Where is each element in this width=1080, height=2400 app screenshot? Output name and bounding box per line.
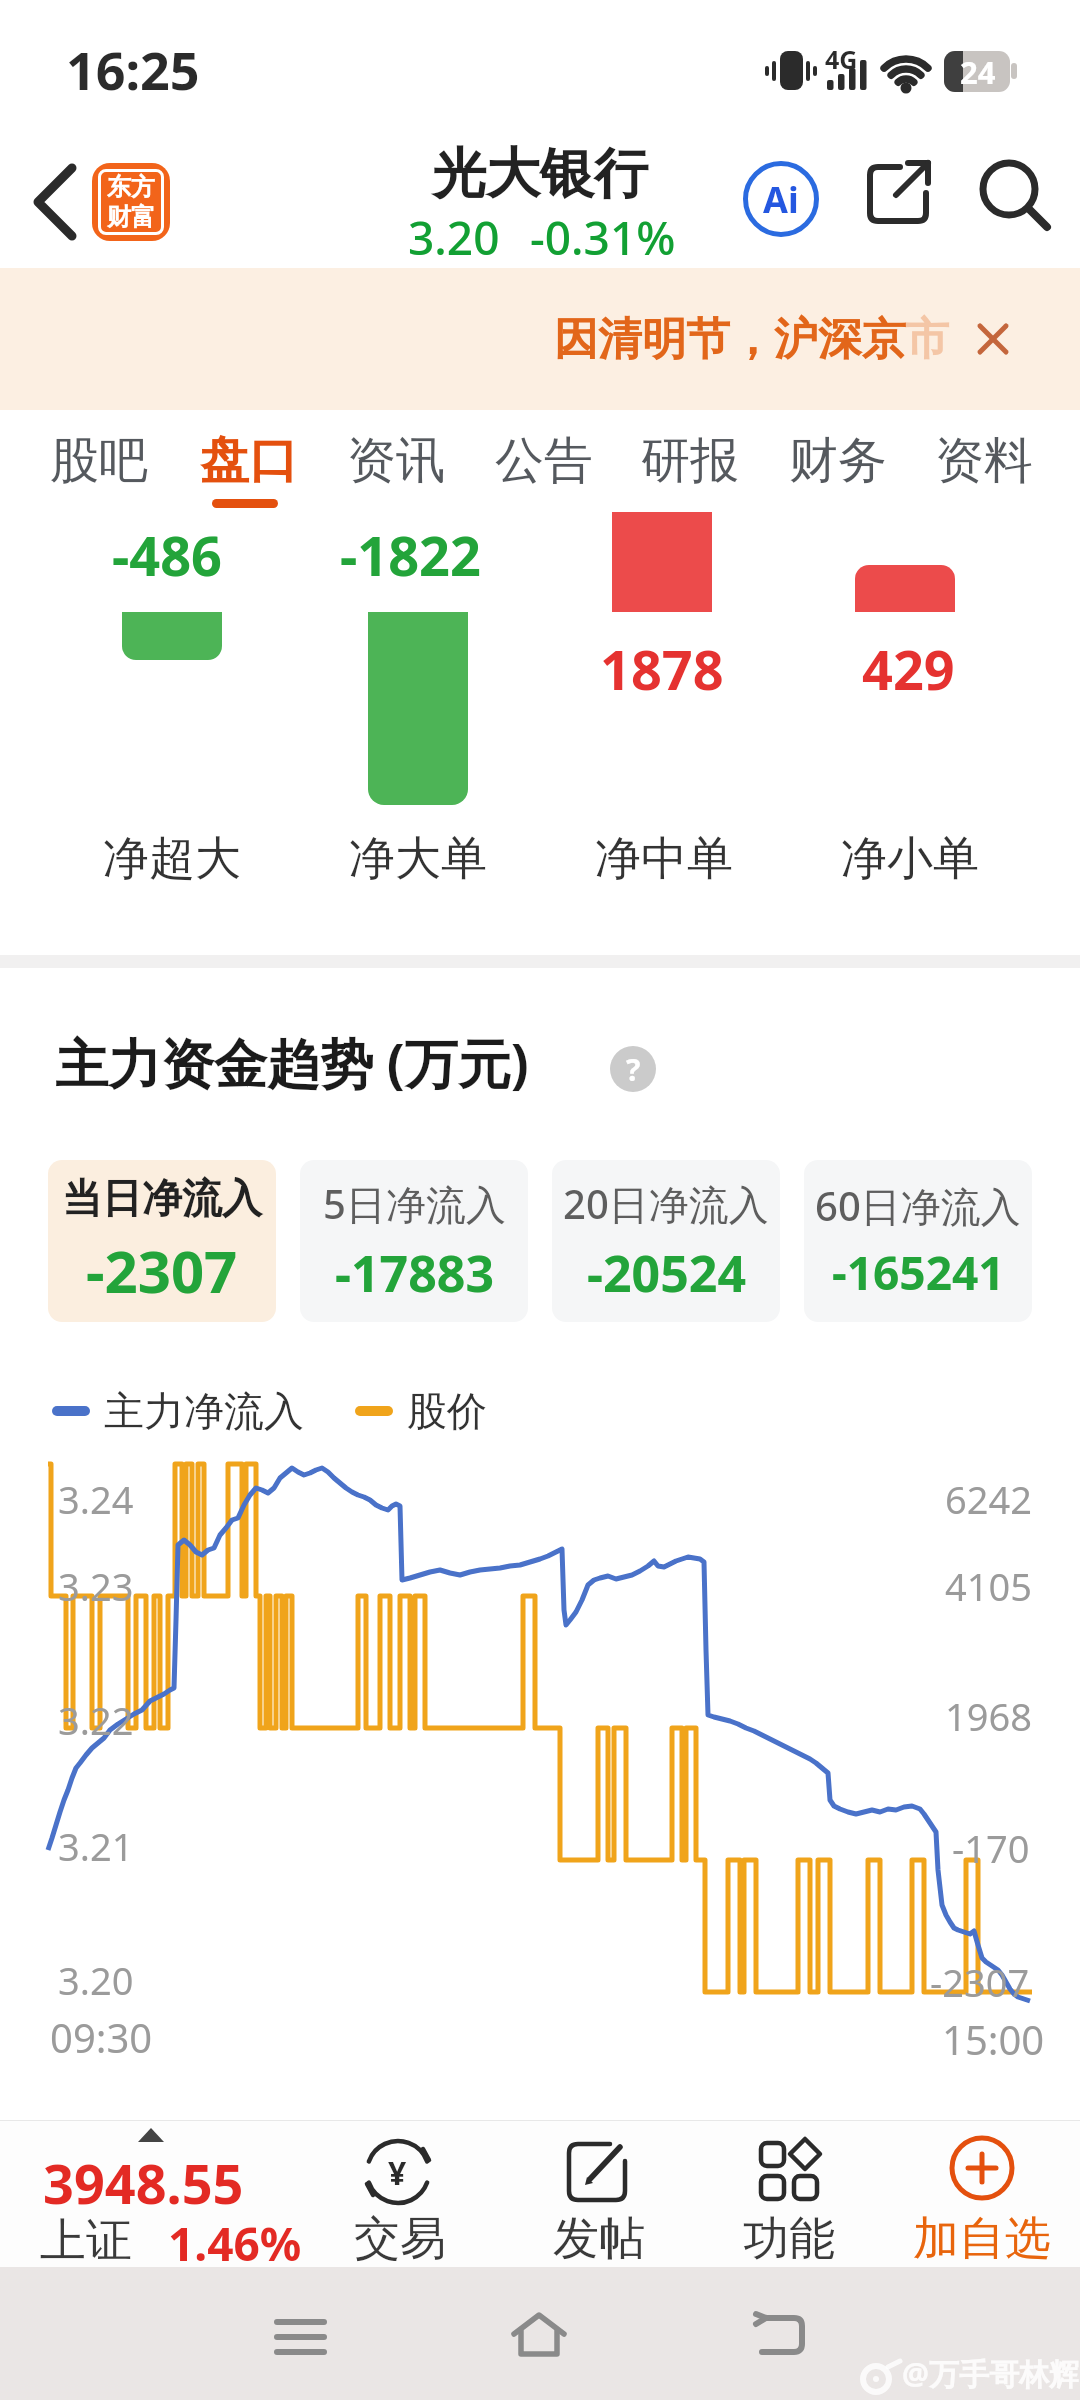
staticText: 发帖 (553, 2210, 645, 2268)
staticText: 东方 (107, 172, 155, 202)
staticText: 20日净流入 (563, 1176, 769, 1231)
staticText: 因清明节，沪深京 (554, 312, 906, 367)
staticText: 3.20 (408, 206, 500, 269)
staticText: 净超大 (103, 830, 241, 888)
staticText: ¥ (388, 2151, 407, 2195)
staticText: 主力资金趋势 (万元) (55, 1026, 529, 1098)
staticText: 上证 (40, 2212, 132, 2270)
button[interactable]: 当日净流入 (48, 1160, 276, 1322)
staticText: 60日净流入 (815, 1178, 1021, 1233)
staticText: 4G (825, 42, 858, 76)
staticText: 3.22 (58, 1694, 134, 1746)
staticText: 当日净流入 (62, 1173, 262, 1223)
staticText: 盘口 (200, 430, 298, 492)
button[interactable]: 5日净流入 (300, 1160, 528, 1322)
button[interactable]: 东方 (92, 163, 170, 241)
staticText: 1.46% (168, 2212, 302, 2275)
staticText: ? (626, 1049, 641, 1090)
staticText: -1822 (340, 518, 481, 592)
staticText: -17883 (335, 1239, 494, 1307)
staticText: 1878 (600, 632, 724, 706)
staticText: 交易 (354, 2210, 446, 2268)
staticText: 3.24 (58, 1473, 134, 1525)
staticText: 5日净流入 (323, 1176, 506, 1231)
button[interactable]: 财务 (779, 420, 899, 512)
button[interactable] (975, 155, 1055, 235)
staticText: 功能 (743, 2210, 835, 2268)
staticText: 6242 (945, 1473, 1032, 1525)
staticText: -20524 (587, 1239, 746, 1307)
button[interactable] (860, 155, 940, 235)
staticText: 股吧 (50, 430, 148, 492)
staticText: 光大银行 (432, 140, 648, 208)
staticText: 16:25 (66, 34, 200, 105)
button[interactable] (492, 2292, 587, 2382)
button[interactable]: 交易 (352, 2130, 452, 2260)
staticText: 净小单 (841, 830, 979, 888)
staticText: 09:30 (50, 2010, 153, 2064)
staticText: 加自选 (913, 2210, 1051, 2268)
staticText: 15:00 (942, 2012, 1045, 2066)
button[interactable]: 资讯 (337, 420, 457, 512)
button[interactable]: 发帖 (551, 2130, 651, 2260)
staticText: 1968 (945, 1690, 1032, 1742)
staticText: 财务 (789, 430, 887, 492)
staticText: 股价 (407, 1386, 487, 1436)
button[interactable] (962, 318, 1022, 378)
staticText: 财富 (107, 202, 155, 232)
button[interactable]: 盘口 (190, 420, 310, 512)
staticText: -165241 (832, 1241, 1005, 1304)
button[interactable]: 资料 (925, 420, 1045, 512)
staticText: 主力净流入 (104, 1386, 304, 1436)
button[interactable]: 功能 (741, 2130, 841, 2260)
button[interactable]: 加自选 (908, 2130, 1068, 2260)
staticText: Ai (763, 175, 799, 224)
button[interactable]: 研报 (631, 420, 751, 512)
staticText: 资料 (935, 430, 1033, 492)
button[interactable]: 60日净流入 (804, 1160, 1032, 1322)
button[interactable]: 公告 (485, 420, 605, 512)
staticText: 3.20 (58, 1954, 134, 2006)
staticText: 3.23 (58, 1560, 134, 1612)
button[interactable]: 3948.55 (20, 2130, 320, 2260)
staticText: 净大单 (349, 830, 487, 888)
staticText: 429 (862, 632, 955, 706)
staticText: -486 (112, 518, 222, 592)
button[interactable] (20, 150, 90, 250)
button[interactable]: ? (610, 1046, 656, 1092)
staticText: 24 (960, 51, 996, 92)
staticText: 研报 (641, 430, 739, 492)
button[interactable]: 股吧 (40, 420, 160, 512)
staticText: 3.21 (58, 1820, 134, 1872)
button[interactable]: 因清明节，沪深京 (0, 268, 1080, 410)
staticText: 资讯 (347, 430, 445, 492)
staticText: -2307 (930, 1956, 1030, 2008)
button[interactable]: Ai (743, 161, 819, 237)
staticText: -2307 (86, 1231, 238, 1310)
staticText: -170 (952, 1822, 1030, 1874)
staticText: 3948.55 (43, 2146, 244, 2220)
button[interactable] (255, 2292, 350, 2382)
staticText: 4105 (945, 1560, 1032, 1612)
staticText: -0.31% (530, 206, 676, 269)
staticText: 市 (905, 312, 949, 367)
button[interactable] (732, 2292, 827, 2382)
staticText: 净中单 (595, 830, 733, 888)
staticText: @万手哥林辉 (902, 2353, 1079, 2394)
staticText: 公告 (495, 430, 593, 492)
button[interactable]: 20日净流入 (552, 1160, 780, 1322)
